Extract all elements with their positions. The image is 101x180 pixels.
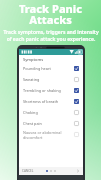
staticText: Trembling or shaking [23, 88, 74, 93]
staticText: CANCEL [22, 169, 34, 173]
button[interactable]: Trembling or shaking [19, 85, 83, 96]
staticText: Track Panic Attacks [0, 1, 101, 28]
staticText: Nausea or abdominal discomfort [23, 130, 74, 140]
button[interactable]: Nausea or abdominal discomfort [19, 129, 83, 140]
staticText: Sweating [23, 77, 74, 82]
staticText: Track symptoms, triggers and intensity o… [3, 29, 99, 42]
button[interactable]: CANCEL [22, 169, 34, 173]
staticText: Symptoms [23, 57, 44, 62]
staticText: Choking [23, 110, 74, 115]
button[interactable]: Sweating [19, 74, 83, 85]
button[interactable]: Chest pain [19, 118, 83, 129]
button[interactable]: Pounding heart [19, 63, 83, 74]
staticText: Pounding heart [23, 66, 74, 71]
staticText: Shortness of breath [23, 99, 74, 104]
staticText: Chest pain [23, 121, 74, 126]
button[interactable]: Shortness of breath [19, 96, 83, 107]
button[interactable]: Choking [19, 107, 83, 118]
button[interactable]: Next [76, 169, 80, 173]
